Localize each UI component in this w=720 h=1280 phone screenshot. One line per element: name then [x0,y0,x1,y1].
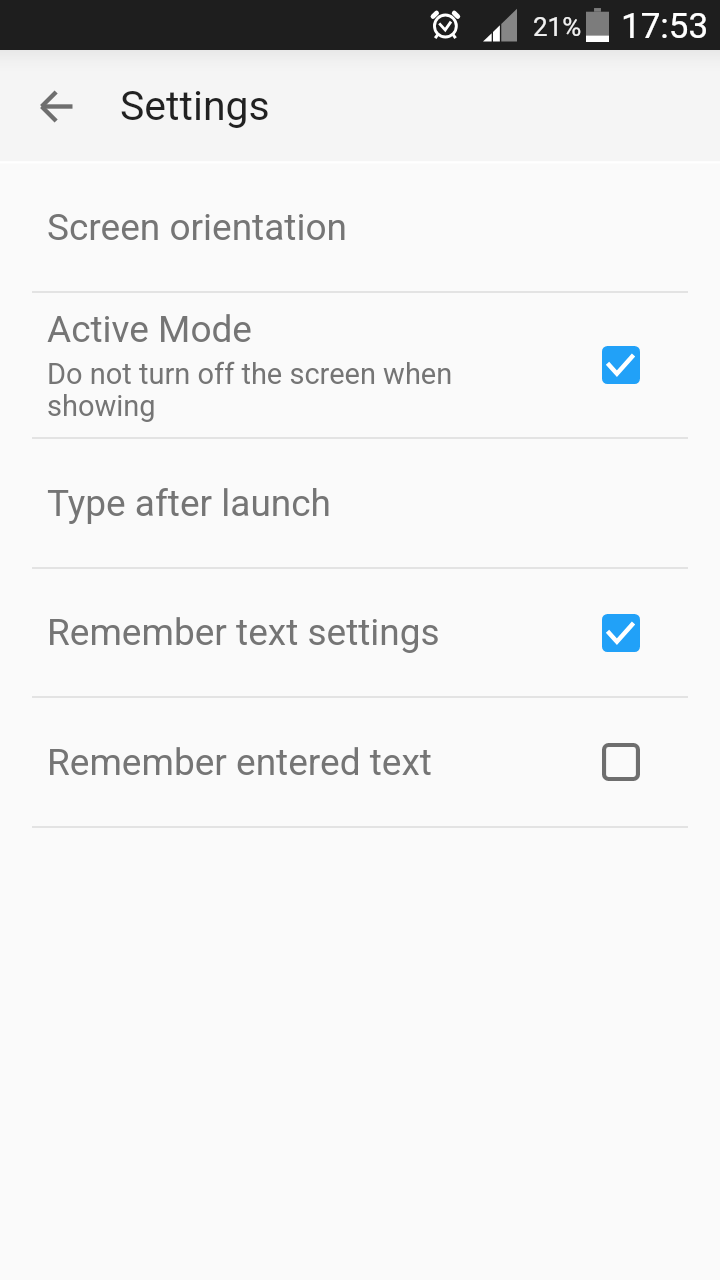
staticText: Type after launch [47,482,331,525]
button[interactable]: Remember text settings [0,569,720,696]
button[interactable]: Screen orientation [0,164,720,291]
staticText: Remember entered text [47,741,432,784]
staticText: Do not turn off the screen when showing [47,357,517,423]
staticText: Screen orientation [47,206,347,249]
staticText: Settings [120,82,270,130]
button[interactable]: Remember text settings [590,602,652,664]
staticText: Active Mode [47,308,252,351]
staticText: 17:53 [621,6,709,47]
button[interactable]: Active Mode [0,293,720,437]
button[interactable]: Remember entered text [590,731,652,793]
button[interactable]: Type after launch [0,439,720,567]
button[interactable]: Navigate up [20,70,92,142]
staticText: Remember text settings [47,611,440,654]
button[interactable]: Active Mode [590,334,652,396]
button[interactable]: Remember entered text [0,698,720,826]
staticText: 21% [533,12,582,42]
